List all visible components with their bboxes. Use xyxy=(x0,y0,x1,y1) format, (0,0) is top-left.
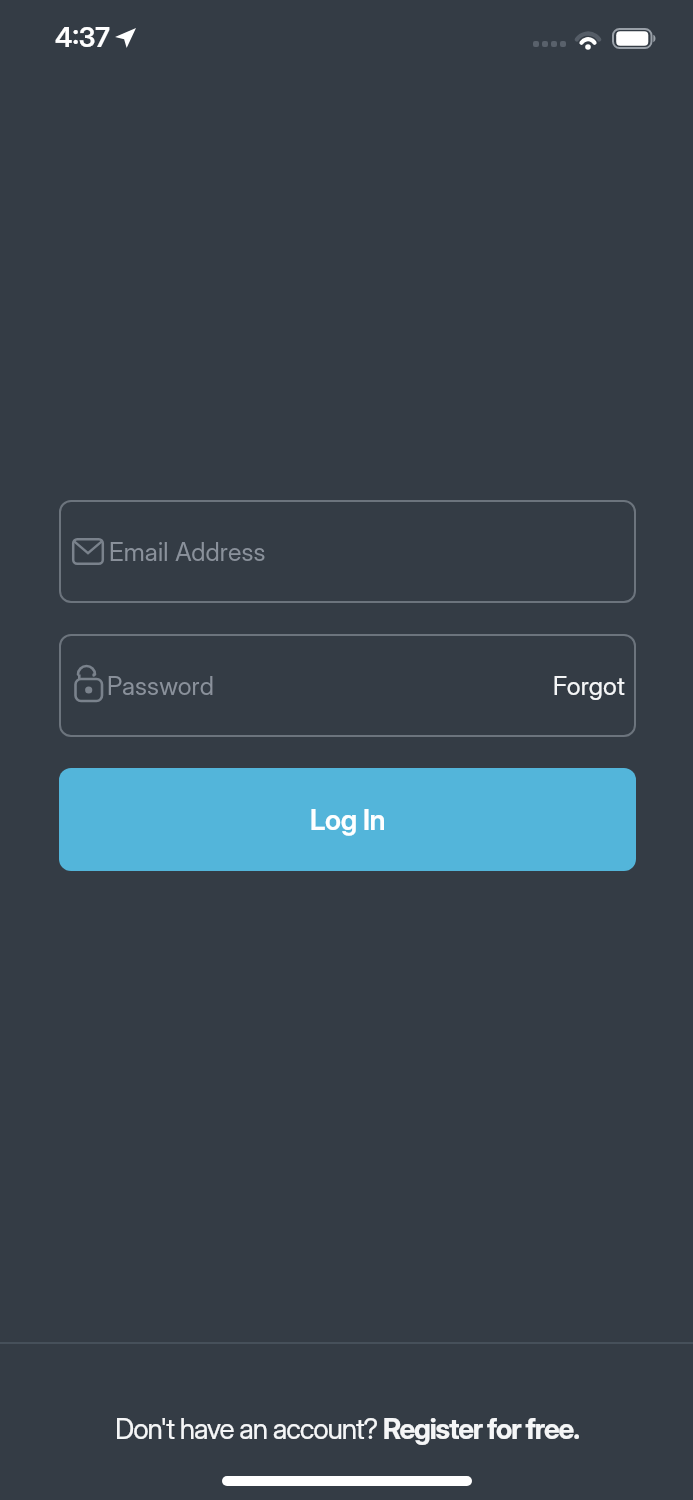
staticText: Password xyxy=(107,671,214,701)
button[interactable]: Log In xyxy=(59,768,636,871)
button[interactable]: Email Address xyxy=(59,500,636,603)
staticText: Log In xyxy=(310,803,386,837)
button[interactable]: Forgot xyxy=(553,671,625,701)
button[interactable]: Password xyxy=(59,634,636,737)
staticText: Email Address xyxy=(109,537,266,567)
button[interactable]: Don't have an account? Register for free… xyxy=(0,1412,693,1446)
staticText: Don't have an account? Register for free… xyxy=(115,1412,579,1446)
staticText: 4:37 xyxy=(55,21,110,54)
